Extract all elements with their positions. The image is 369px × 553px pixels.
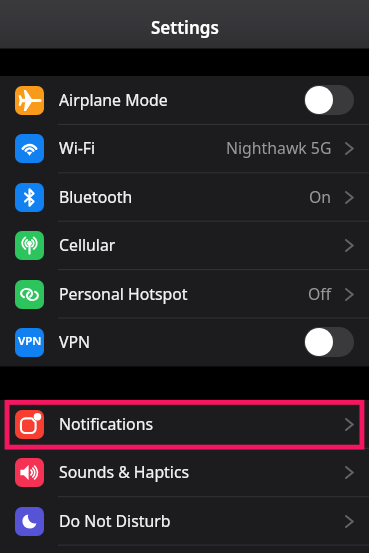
button[interactable]: Toggle: [304, 85, 354, 115]
button[interactable]: Cellular: [0, 221, 369, 269]
staticText: Airplane Mode: [59, 89, 168, 111]
staticText: Nighthawk 5G: [226, 137, 332, 159]
button[interactable]: VPN: [0, 318, 369, 366]
button[interactable]: Settings: [0, 0, 369, 48]
staticText: Wi-Fi: [59, 137, 96, 159]
staticText: Personal Hotspot: [59, 283, 188, 305]
button[interactable]: Sounds & Haptics: [0, 448, 369, 496]
staticText: On: [309, 186, 332, 208]
staticText: VPN: [59, 331, 91, 353]
button[interactable]: Wi-Fi: [0, 124, 369, 172]
button[interactable]: Bluetooth: [0, 173, 369, 221]
staticText: Bluetooth: [59, 186, 133, 208]
button[interactable]: Airplane Mode: [0, 76, 369, 124]
button[interactable]: Toggle: [304, 327, 354, 357]
staticText: Cellular: [59, 234, 116, 256]
staticText: Notifications: [59, 413, 153, 435]
button[interactable]: Notifications: [0, 400, 369, 448]
button[interactable]: Do Not Disturb: [0, 497, 369, 545]
staticText: Settings: [151, 16, 219, 39]
staticText: Do Not Disturb: [59, 510, 171, 532]
staticText: Off: [308, 283, 332, 305]
staticText: Sounds & Haptics: [59, 461, 190, 483]
button[interactable]: Personal Hotspot: [0, 270, 369, 318]
staticText: VPN: [18, 333, 42, 349]
